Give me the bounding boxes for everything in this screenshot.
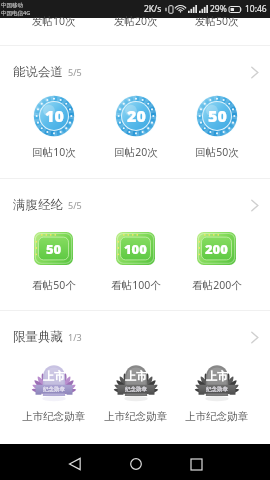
button[interactable]: 上市	[95, 358, 176, 433]
button[interactable]: Back	[57, 446, 93, 480]
staticText: 纪念勋章	[125, 386, 147, 393]
staticText: 上市纪念勋章	[104, 410, 167, 423]
staticText: 2K/s	[144, 3, 162, 15]
button[interactable]: 20	[95, 93, 176, 168]
staticText: 10	[45, 105, 64, 127]
staticText: 1/3	[68, 331, 82, 343]
button[interactable]: 上市	[176, 358, 257, 433]
staticText: 上市	[43, 369, 65, 383]
staticText: 上市	[206, 369, 228, 383]
staticText: 看帖50个	[32, 278, 76, 292]
staticText: 中国电信4G	[1, 9, 31, 17]
staticText: 50	[208, 105, 227, 127]
staticText: 发帖20次	[114, 14, 158, 28]
staticText: 回帖50次	[195, 145, 239, 159]
staticText: 限量典藏	[13, 329, 63, 345]
staticText: 5/5	[68, 66, 82, 78]
staticText: 50	[46, 240, 62, 258]
staticText: 10:46	[245, 3, 267, 15]
staticText: 上市纪念勋章	[22, 410, 85, 423]
staticText: 5/5	[68, 199, 82, 211]
button[interactable]: 能说会道	[0, 59, 270, 85]
staticText: 上市	[125, 369, 147, 383]
staticText: 上市纪念勋章	[185, 410, 248, 423]
button[interactable]: Home	[118, 446, 154, 480]
staticText: 回帖20次	[114, 145, 158, 159]
staticText: 中国移动	[1, 2, 23, 9]
button[interactable]: 10	[13, 93, 94, 168]
button[interactable]: 限量典藏	[0, 324, 270, 350]
staticText: 满腹经纶	[13, 197, 63, 213]
staticText: 能说会道	[13, 64, 63, 80]
staticText: 发帖50次	[195, 14, 239, 28]
staticText: 20	[127, 105, 146, 127]
staticText: 200	[205, 240, 228, 258]
button[interactable]: 50	[13, 226, 94, 301]
staticText: 29%	[210, 3, 227, 15]
button[interactable]: Recents	[178, 446, 214, 480]
staticText: 100	[124, 240, 147, 258]
button[interactable]: 上市	[13, 358, 94, 433]
staticText: 看帖100个	[111, 278, 161, 292]
button[interactable]: 200	[176, 226, 257, 301]
button[interactable]: 100	[95, 226, 176, 301]
staticText: 纪念勋章	[206, 386, 228, 393]
button[interactable]: 50	[176, 93, 257, 168]
staticText: 看帖200个	[192, 278, 242, 292]
staticText: 发帖10次	[32, 14, 76, 28]
staticText: 回帖10次	[32, 145, 76, 159]
staticText: 纪念勋章	[43, 386, 65, 393]
button[interactable]: 满腹经纶	[0, 192, 270, 218]
